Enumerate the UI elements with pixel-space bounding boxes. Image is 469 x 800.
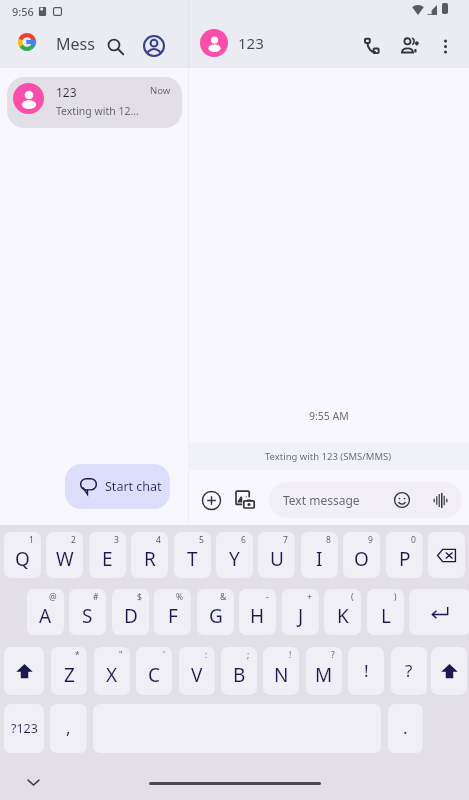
button[interactable]: ! [348, 647, 384, 695]
staticText: H [250, 603, 265, 629]
button[interactable]: . [388, 704, 423, 753]
button[interactable]: * [51, 647, 87, 695]
button[interactable]: 4 [131, 532, 168, 578]
staticText: Texting with 12… [56, 104, 139, 118]
button[interactable]: Call [356, 31, 386, 61]
button[interactable]: Account [139, 31, 169, 61]
button[interactable]: ! [263, 647, 299, 695]
staticText: Text message [283, 492, 360, 508]
staticText: J [298, 603, 304, 629]
staticText: T [187, 546, 198, 572]
button[interactable]: + [282, 589, 319, 635]
button[interactable]: More options [430, 31, 460, 61]
staticText: # [93, 591, 99, 603]
button[interactable]: ? [306, 647, 342, 695]
staticText: C [148, 662, 161, 688]
button[interactable]: Hide keyboard [20, 769, 46, 795]
staticText: W [56, 546, 74, 572]
staticText: B [233, 662, 246, 688]
staticText: 3 [114, 534, 119, 546]
staticText: , [66, 716, 71, 739]
staticText: U [270, 546, 284, 572]
button[interactable]: Google [18, 33, 36, 51]
button[interactable]: Voice message [428, 488, 452, 512]
staticText: 123 [238, 33, 264, 53]
staticText: ! [289, 649, 292, 661]
button[interactable]: 5 [174, 532, 211, 578]
staticText: M [315, 662, 333, 688]
button[interactable]: Text message [269, 482, 462, 518]
button[interactable]: ' [136, 647, 172, 695]
staticText: % [176, 591, 184, 603]
button[interactable]: Search [101, 32, 129, 60]
button[interactable]: $ [112, 589, 149, 635]
staticText: ( [351, 591, 354, 603]
button[interactable]: Enter [409, 589, 469, 635]
button[interactable]: " [94, 647, 130, 695]
staticText: ; [247, 649, 250, 661]
staticText: G [209, 603, 223, 629]
button[interactable]: ( [324, 589, 361, 635]
button[interactable]: 9 [343, 532, 380, 578]
button[interactable]: 7 [258, 532, 295, 578]
button[interactable]: ) [367, 589, 404, 635]
staticText: : [205, 649, 208, 661]
staticText: ? [331, 649, 335, 661]
staticText: & [220, 591, 227, 603]
staticText: D [124, 603, 138, 629]
other: Shift [16, 663, 33, 680]
button[interactable]: Attach [197, 486, 225, 514]
staticText: Texting with 123 (SMS/MMS) [265, 450, 392, 463]
button[interactable]: & [197, 589, 234, 635]
other: Enter [431, 604, 448, 621]
button[interactable]: 0 [386, 532, 423, 578]
staticText: Start chat [105, 478, 162, 495]
staticText: A [39, 603, 52, 629]
button[interactable]: Emoji [390, 488, 414, 512]
button[interactable]: Start chat [65, 464, 170, 509]
staticText: Mess [56, 33, 95, 55]
button[interactable]: - [239, 589, 276, 635]
button[interactable]: ?123 [4, 704, 44, 753]
staticText: ? [405, 659, 413, 682]
staticText: 7 [283, 534, 288, 546]
staticText: 123 [56, 84, 77, 100]
button[interactable]: # [69, 589, 106, 635]
button[interactable]: ? [391, 647, 427, 695]
button[interactable]: Gallery [231, 486, 259, 514]
staticText: 2 [71, 534, 76, 546]
button[interactable]: ; [221, 647, 257, 695]
button[interactable]: Add people [395, 31, 425, 61]
button[interactable]: 2 [46, 532, 83, 578]
staticText: 0 [411, 534, 416, 546]
staticText: - [266, 591, 269, 603]
other: Shift [441, 663, 458, 680]
staticText: 4 [156, 534, 161, 546]
staticText: 9 [368, 534, 373, 546]
staticText: X [106, 662, 118, 688]
button[interactable]: Shift [4, 647, 44, 695]
button[interactable]: 123 [7, 77, 182, 128]
staticText: ?123 [11, 720, 38, 737]
button[interactable]: 1 [4, 532, 41, 578]
staticText: 9:55 AM [309, 409, 349, 423]
button[interactable]: 6 [216, 532, 253, 578]
staticText: " [119, 649, 123, 661]
button[interactable]: 3 [89, 532, 126, 578]
staticText: * [75, 649, 80, 661]
button[interactable]: : [179, 647, 215, 695]
button[interactable]: @ [27, 589, 64, 635]
staticText: 6 [241, 534, 246, 546]
button[interactable]: Shift [431, 647, 467, 695]
staticText: 8 [326, 534, 331, 546]
button[interactable]: % [154, 589, 191, 635]
staticText: S [82, 603, 93, 629]
staticText: E [102, 546, 113, 572]
button[interactable]: 8 [301, 532, 338, 578]
staticText: Q [15, 546, 30, 572]
button[interactable]: , [50, 704, 87, 753]
button[interactable]: Backspace [428, 532, 465, 578]
staticText: 9:56 [12, 4, 34, 19]
